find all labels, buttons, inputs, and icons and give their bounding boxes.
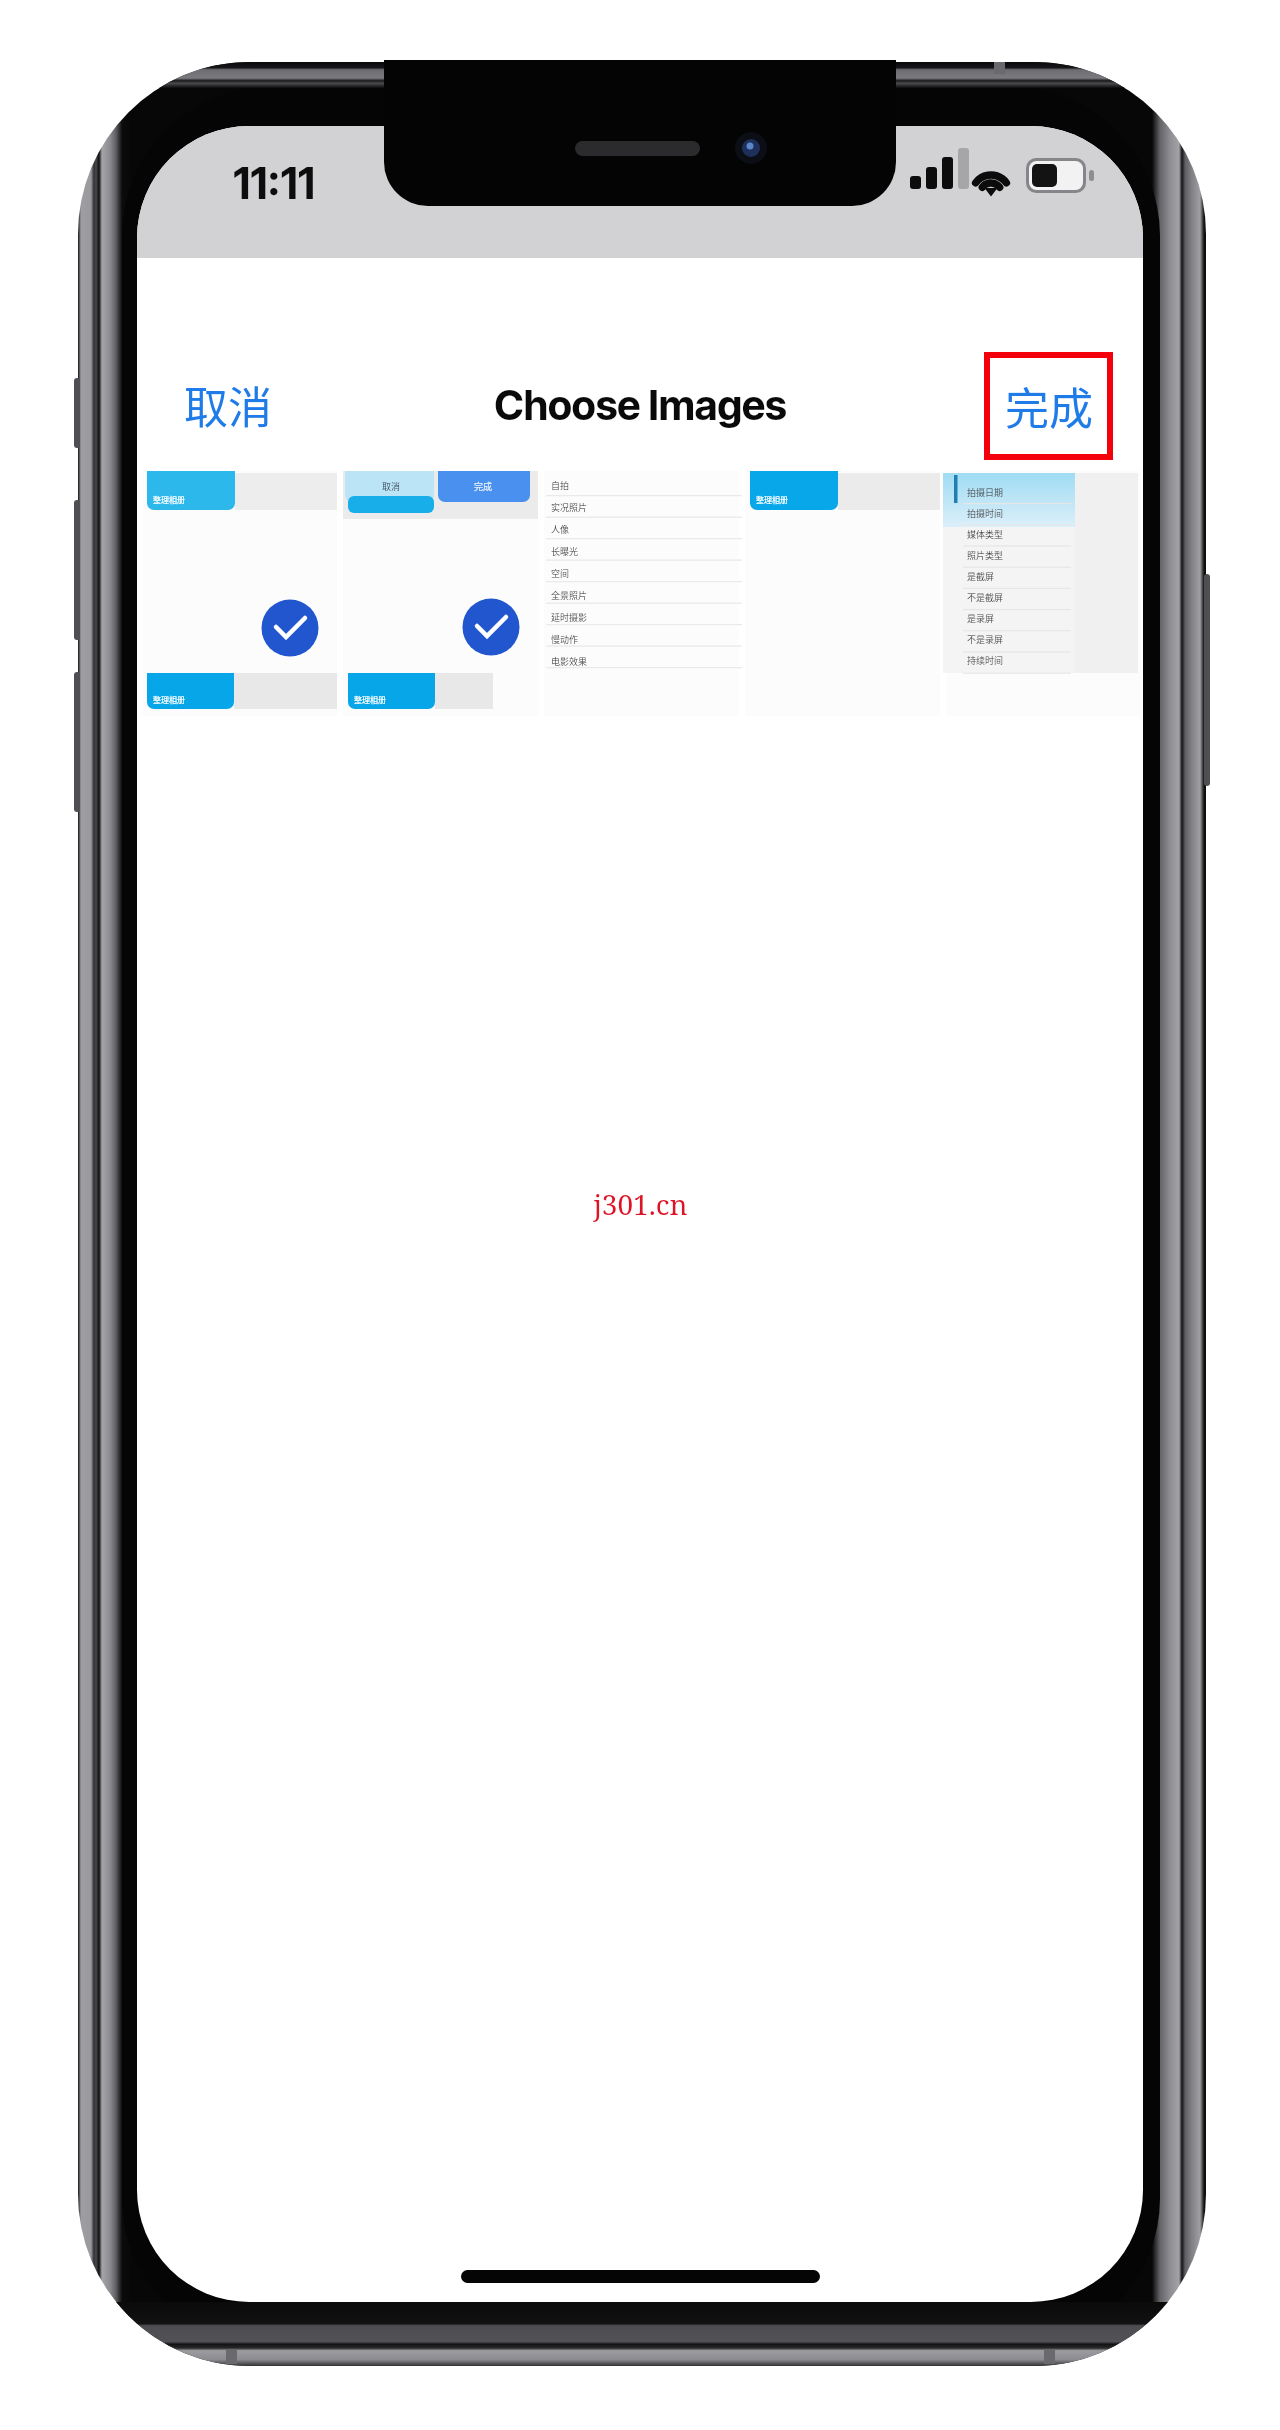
staticText: 长曝光: [551, 545, 579, 558]
button[interactable]: Photo 2, selected: [343, 471, 538, 716]
staticText: 整理相册: [153, 494, 185, 506]
staticText: Choose Images: [494, 380, 787, 430]
staticText: 媒体类型: [967, 528, 1004, 541]
staticText: 取消: [184, 373, 272, 437]
staticText: 不是录屏: [967, 633, 1004, 646]
staticText: 整理相册: [153, 694, 185, 706]
button[interactable]: Photo 5: [946, 471, 1141, 716]
staticText: 11:11: [233, 157, 315, 209]
staticText: 是截屏: [967, 570, 995, 583]
button[interactable]: Photo 3: [544, 471, 739, 716]
button[interactable]: 完成: [986, 353, 1111, 458]
staticText: 人像: [551, 523, 570, 536]
button[interactable]: Photo 4: [745, 471, 940, 716]
staticText: 慢动作: [551, 633, 579, 646]
staticText: 不是截屏: [967, 591, 1004, 604]
staticText: 全景照片: [551, 589, 588, 602]
staticText: j301.cn: [593, 1185, 688, 1223]
staticText: 拍摄日期: [967, 486, 1004, 499]
staticText: 延时摄影: [551, 611, 588, 624]
staticText: 是录屏: [967, 612, 995, 625]
staticText: 整理相册: [756, 494, 788, 506]
staticText: 拍摄时间: [967, 507, 1004, 520]
staticText: 整理相册: [354, 694, 386, 706]
staticText: 完成: [1005, 374, 1093, 438]
staticText: 取消: [382, 480, 401, 493]
staticText: 完成: [474, 480, 493, 493]
staticText: 空间: [551, 567, 570, 580]
button[interactable]: Photo 1, selected: [142, 471, 337, 716]
staticText: 照片类型: [967, 549, 1004, 562]
button[interactable]: Deselect photo 1: [261, 599, 319, 657]
button[interactable]: 取消: [181, 372, 275, 438]
staticText: 持续时间: [967, 654, 1004, 667]
staticText: 自拍: [551, 479, 570, 492]
staticText: 电影效果: [551, 655, 588, 668]
button[interactable]: Deselect photo 2: [462, 598, 520, 656]
staticText: 实况照片: [551, 501, 588, 514]
